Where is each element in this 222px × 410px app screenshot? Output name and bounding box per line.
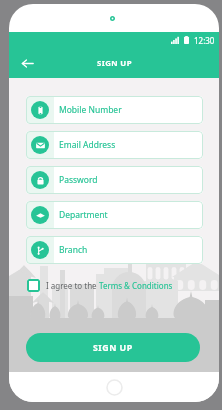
- button[interactable]: Branch: [26, 236, 203, 264]
- staticText: Branch: [59, 244, 88, 256]
- button[interactable]: Back: [16, 52, 38, 74]
- button[interactable]: Mobile Number: [26, 96, 203, 124]
- staticText: SIGN UP: [97, 58, 132, 69]
- staticText: Mobile Number: [59, 104, 122, 116]
- staticText: Password: [59, 174, 98, 186]
- button[interactable]: SIGN UP: [26, 333, 200, 362]
- staticText: Email Address: [59, 139, 116, 151]
- staticText: Department: [59, 209, 108, 221]
- button[interactable]: Password: [26, 166, 203, 194]
- staticText: 12:30: [194, 35, 215, 46]
- staticText: Terms & Conditions: [99, 280, 173, 291]
- button[interactable]: Email Address: [26, 131, 203, 159]
- staticText: I agree to the: [46, 280, 99, 291]
- staticText: SIGN UP: [93, 342, 133, 354]
- button[interactable]: I agree to the: [27, 279, 173, 292]
- button[interactable]: Department: [26, 201, 203, 229]
